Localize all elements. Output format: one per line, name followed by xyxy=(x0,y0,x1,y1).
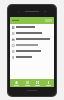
button[interactable] xyxy=(10,48,54,54)
button[interactable] xyxy=(10,54,54,60)
button[interactable]: Lists xyxy=(22,79,32,87)
button[interactable] xyxy=(10,36,54,42)
button[interactable]: Home xyxy=(11,79,21,87)
button[interactable] xyxy=(10,42,54,48)
button[interactable]: Action xyxy=(10,17,54,24)
button[interactable]: More xyxy=(43,79,53,87)
button[interactable]: Grid xyxy=(32,79,42,87)
button[interactable] xyxy=(10,24,54,30)
button[interactable] xyxy=(10,30,54,36)
